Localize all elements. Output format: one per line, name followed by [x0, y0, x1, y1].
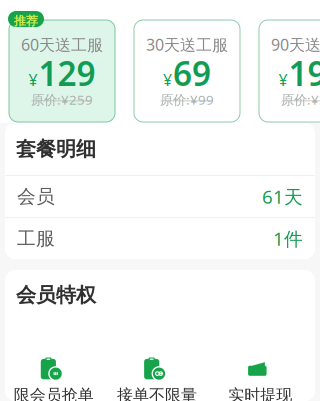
staticText: 129 — [38, 51, 95, 95]
button[interactable]: 30天送工服 — [134, 20, 240, 122]
staticText: 会员 — [17, 185, 55, 208]
button[interactable]: 实时提现 — [209, 357, 312, 401]
staticText: ¥ — [163, 69, 172, 90]
button[interactable]: 90天送工服 — [259, 20, 320, 122]
staticText: 接单不限量 — [117, 385, 197, 401]
staticText: 60天送工服 — [21, 34, 103, 55]
staticText: 套餐明细 — [16, 137, 96, 161]
staticText: 工服 — [17, 227, 55, 250]
staticText: 推荐 — [14, 14, 38, 28]
staticText: 原价:¥259 — [31, 91, 93, 108]
staticText: 原价:¥399 — [281, 91, 320, 108]
staticText: 90天送工服 — [271, 34, 320, 55]
staticText: 61天 — [262, 184, 303, 209]
staticText: 原价:¥99 — [160, 91, 214, 108]
staticText: 199 — [288, 51, 320, 95]
staticText: ¥ — [28, 69, 37, 90]
staticText: 会员特权 — [16, 283, 96, 307]
button[interactable]: 接单不限量 — [105, 357, 209, 401]
staticText: ¥ — [278, 69, 287, 90]
button[interactable]: 推荐 — [8, 11, 44, 27]
button[interactable]: 限会员抢单 — [2, 357, 105, 401]
staticText: 69 — [173, 51, 211, 95]
staticText: 限会员抢单 — [14, 385, 94, 401]
staticText: 实时提现 — [228, 385, 292, 401]
staticText: 1件 — [273, 226, 303, 251]
staticText: 30天送工服 — [146, 34, 228, 55]
button[interactable]: 60天送工服 — [9, 20, 115, 122]
